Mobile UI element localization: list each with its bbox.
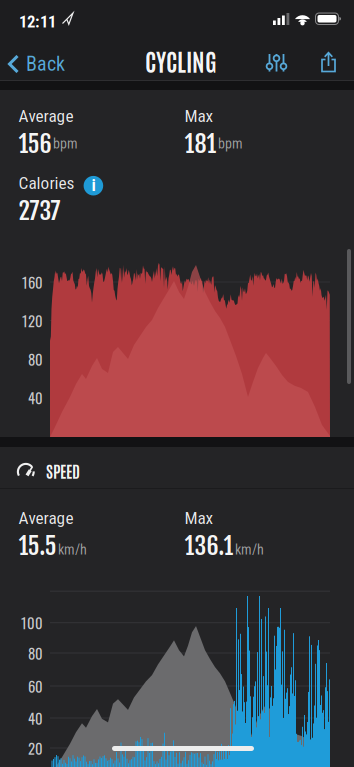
staticText: 156	[18, 129, 51, 159]
staticText: 15.5	[18, 531, 56, 561]
staticText: Max	[184, 508, 213, 528]
staticText: bpm	[53, 136, 78, 152]
staticText: 80	[28, 642, 43, 664]
staticText: 136.1	[184, 531, 233, 561]
staticText: CYCLING	[145, 45, 217, 76]
button[interactable]: Share	[309, 42, 347, 80]
staticText: 80	[28, 348, 43, 370]
staticText: Calories	[18, 173, 74, 193]
staticText: 40	[28, 707, 43, 729]
button[interactable]: Calories info	[83, 176, 103, 196]
staticText: 2737	[18, 196, 60, 226]
staticText: 160	[22, 271, 43, 293]
staticText: Average	[18, 508, 73, 528]
staticText: 12:11	[19, 12, 56, 31]
staticText: km/h	[58, 542, 87, 558]
staticText: 120	[22, 310, 43, 331]
button[interactable]: Chart settings	[257, 43, 295, 81]
button[interactable]: Back	[7, 49, 65, 79]
staticText: Average	[18, 106, 73, 126]
staticText: 181	[184, 129, 216, 159]
staticText: Back	[26, 52, 65, 76]
staticText: 100	[21, 612, 43, 633]
staticText: 60	[28, 675, 43, 697]
staticText: 20	[28, 737, 43, 759]
staticText: SPEED	[46, 460, 80, 481]
staticText: Max	[184, 106, 213, 126]
staticText: 40	[28, 387, 43, 408]
staticText: i	[91, 175, 95, 195]
staticText: bpm	[218, 136, 243, 152]
staticText: km/h	[235, 542, 264, 558]
